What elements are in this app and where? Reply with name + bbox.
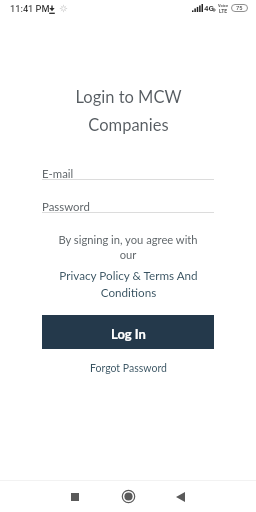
button[interactable]: E-mail [42,166,214,180]
staticText: Log In [111,326,146,342]
button[interactable]: Privacy Policy & Terms And Conditions [59,268,198,299]
staticText: Privacy Policy & Terms And Conditions [59,268,198,299]
staticText: 11:41 PM [10,3,50,14]
button[interactable]: Forgot Password [84,359,173,378]
button[interactable]: Home [106,480,151,512]
button[interactable]: Recent apps [52,480,97,512]
staticText: 4G [204,4,215,13]
staticText: By signing in, you agree with our [58,233,198,262]
staticText: Forgot Password [90,362,167,375]
staticText: LTE [219,8,228,14]
staticText: Voice [218,3,229,8]
button[interactable]: Log In [42,315,214,349]
staticText: E-mail [42,167,74,181]
staticText: Login to MCW Companies [75,87,182,135]
button[interactable]: Password [42,199,214,213]
staticText: Password [42,200,90,214]
staticText: 75 [236,5,243,12]
button[interactable]: Back [158,480,203,512]
